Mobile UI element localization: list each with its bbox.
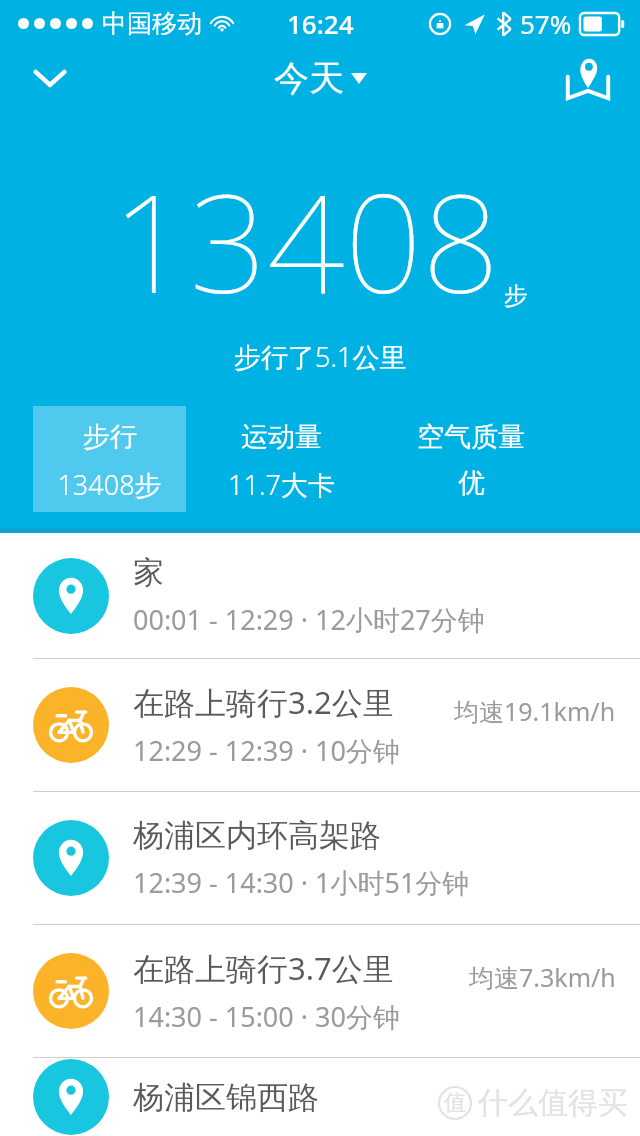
staticText: 12:29 - 12:39 · 10分钟 xyxy=(133,732,400,769)
button[interactable]: Map xyxy=(556,46,620,110)
staticText: 13408 xyxy=(112,148,500,333)
staticText: 中国移动 xyxy=(102,8,202,39)
button[interactable]: 杨浦区锦西路 xyxy=(0,1058,640,1136)
staticText: 值 xyxy=(444,1089,466,1117)
staticText: 00:01 - 12:29 · 12小时27分钟 xyxy=(133,601,485,638)
staticText: 优 xyxy=(458,466,485,500)
button[interactable]: Collapse xyxy=(20,48,80,108)
staticText: 16:24 xyxy=(287,6,354,41)
staticText: 家 xyxy=(133,553,164,592)
staticText: 13408步 xyxy=(57,466,162,503)
staticText: 今天 xyxy=(274,56,344,100)
button[interactable]: 今天 xyxy=(274,56,367,100)
button[interactable]: 步行 xyxy=(33,406,186,512)
staticText: 14:30 - 15:00 · 30分钟 xyxy=(133,998,400,1035)
staticText: 步行了5.1公里 xyxy=(234,338,407,375)
staticText: 均速19.1km/h xyxy=(454,694,616,728)
button[interactable]: 杨浦区内环高架路 xyxy=(0,792,640,924)
staticText: 均速7.3km/h xyxy=(469,960,616,994)
staticText: 在路上骑行3.2公里 xyxy=(133,681,394,723)
staticText: 运动量 xyxy=(241,420,322,454)
staticText: 杨浦区锦西路 xyxy=(133,1078,319,1117)
staticText: 在路上骑行3.7公里 xyxy=(133,947,394,989)
button[interactable]: 运动量 xyxy=(186,406,376,512)
staticText: 杨浦区内环高架路 xyxy=(133,816,381,855)
staticText: 步行 xyxy=(83,420,137,454)
staticText: 步 xyxy=(504,281,528,311)
button[interactable]: 在路上骑行3.7公里 xyxy=(0,925,640,1057)
staticText: 空气质量 xyxy=(417,420,525,454)
staticText: 12:39 - 14:30 · 1小时51分钟 xyxy=(133,864,470,901)
button[interactable]: 家 xyxy=(0,533,640,658)
button[interactable]: 空气质量 xyxy=(376,406,566,512)
staticText: 57% xyxy=(520,6,572,41)
staticText: 什么值得买 xyxy=(478,1084,628,1122)
button[interactable]: 在路上骑行3.2公里 xyxy=(0,659,640,791)
staticText: 11.7大卡 xyxy=(228,466,335,503)
